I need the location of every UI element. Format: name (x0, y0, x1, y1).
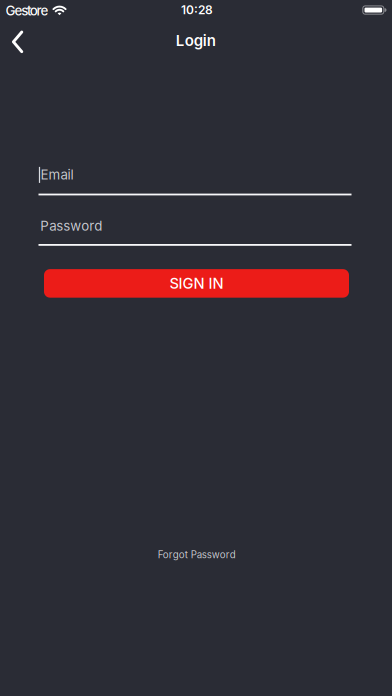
button[interactable]: Password (38, 210, 351, 246)
button[interactable]: SIGN IN (44, 269, 349, 298)
staticText: 10:28 (181, 3, 213, 17)
staticText: Password (40, 218, 102, 234)
staticText: SIGN IN (169, 275, 223, 292)
button[interactable]: Forgot Password (158, 549, 236, 561)
staticText: Login (176, 31, 216, 50)
staticText: Email (40, 167, 73, 182)
staticText: Gestore (6, 3, 48, 18)
button[interactable]: Back (7, 26, 28, 58)
button[interactable]: Email (38, 159, 351, 195)
staticText: Forgot Password (158, 549, 236, 561)
